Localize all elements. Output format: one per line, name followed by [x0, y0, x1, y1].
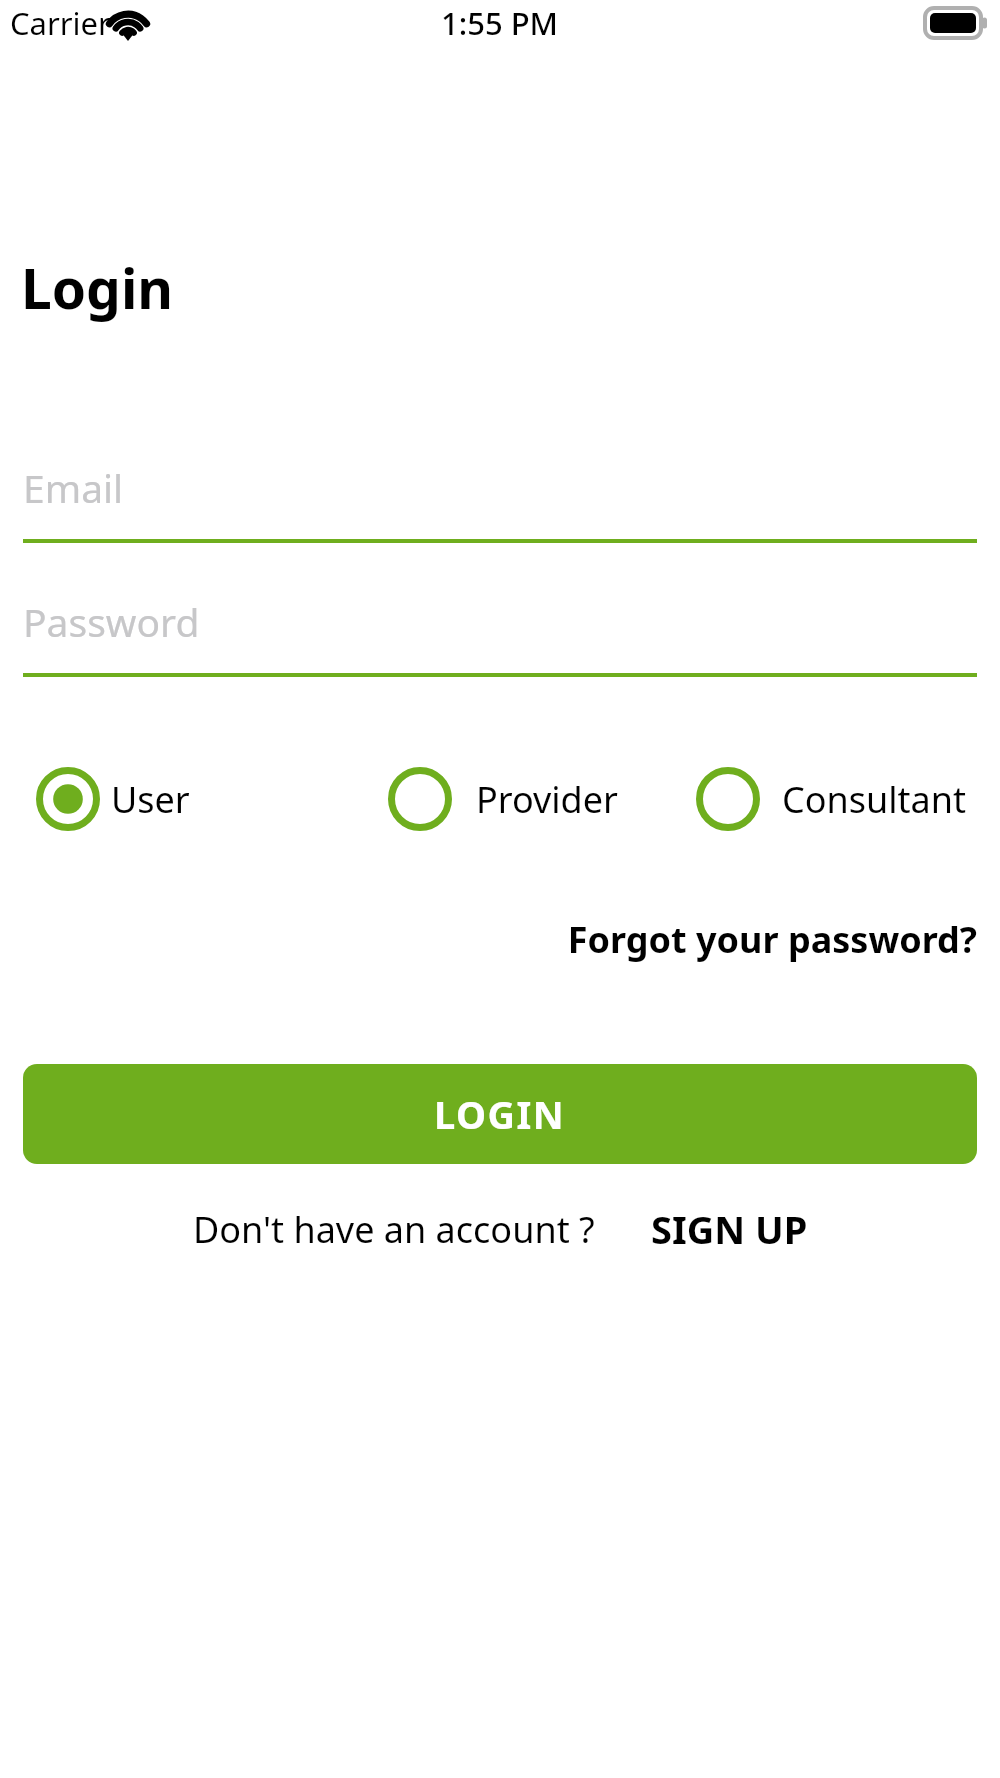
- button[interactable]: Consultant: [696, 764, 982, 834]
- button[interactable]: Email: [23, 453, 977, 543]
- staticText: Provider: [476, 775, 618, 824]
- staticText: LOGIN: [434, 1088, 566, 1140]
- button[interactable]: LOGIN: [23, 1064, 977, 1164]
- staticText: 1:55 PM: [441, 2, 559, 44]
- other: Battery full: [925, 8, 987, 38]
- staticText: Email: [23, 461, 124, 514]
- button[interactable]: SIGN UP: [651, 1203, 808, 1255]
- staticText: Password: [23, 595, 200, 648]
- other: Wi-Fi: [104, 6, 152, 42]
- button[interactable]: Password: [23, 587, 977, 677]
- staticText: Forgot your password?: [567, 915, 977, 964]
- staticText: SIGN UP: [651, 1203, 808, 1255]
- staticText: Carrier: [10, 2, 111, 44]
- button[interactable]: Provider: [388, 764, 636, 834]
- staticText: Consultant: [782, 775, 966, 824]
- button[interactable]: User: [36, 764, 191, 834]
- button[interactable]: Forgot your password?: [460, 908, 977, 970]
- staticText: User: [111, 775, 190, 824]
- staticText: Don't have an account ?: [193, 1205, 595, 1254]
- staticText: Login: [21, 250, 174, 325]
